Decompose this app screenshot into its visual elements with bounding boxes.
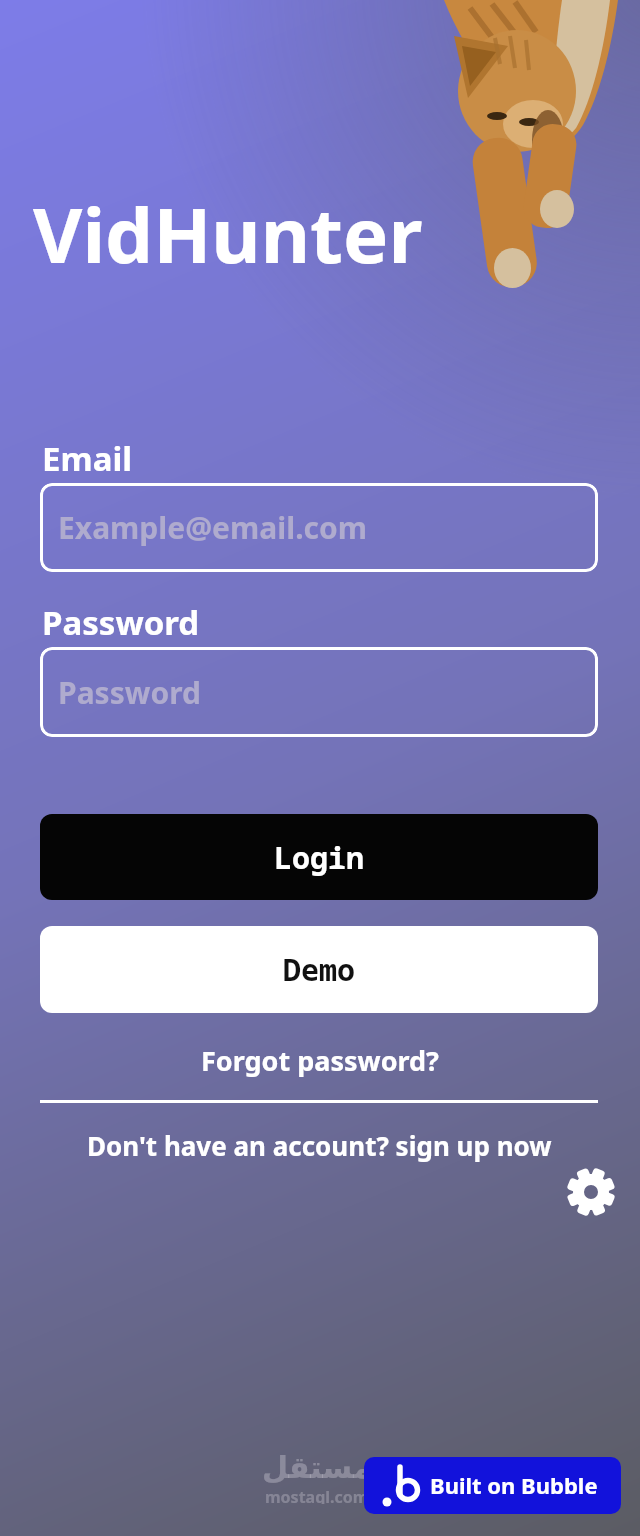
button[interactable]: Demo: [40, 926, 598, 1013]
staticText: Don't have an account? sign up now: [87, 1128, 552, 1163]
staticText: Email: [42, 436, 133, 476]
staticText: mostaql.com: [265, 1486, 369, 1504]
button[interactable]: Login: [40, 814, 598, 900]
staticText: VidHunter: [33, 182, 423, 282]
button[interactable]: Built on Bubble: [364, 1457, 621, 1514]
staticText: Password: [58, 672, 201, 713]
staticText: Built on Bubble: [430, 1470, 598, 1500]
button[interactable]: Don't have an account? sign up now: [40, 1123, 598, 1167]
button[interactable]: [567, 1168, 615, 1216]
staticText: Login: [274, 837, 364, 878]
button[interactable]: Example@email.com: [40, 483, 598, 572]
staticText: مستقل: [262, 1450, 372, 1485]
button[interactable]: Password: [40, 647, 598, 737]
staticText: Forgot password?: [201, 1042, 439, 1079]
staticText: Example@email.com: [58, 507, 368, 548]
staticText: Demo: [283, 949, 355, 990]
staticText: Password: [42, 600, 200, 640]
button[interactable]: Forgot password?: [70, 1038, 570, 1082]
